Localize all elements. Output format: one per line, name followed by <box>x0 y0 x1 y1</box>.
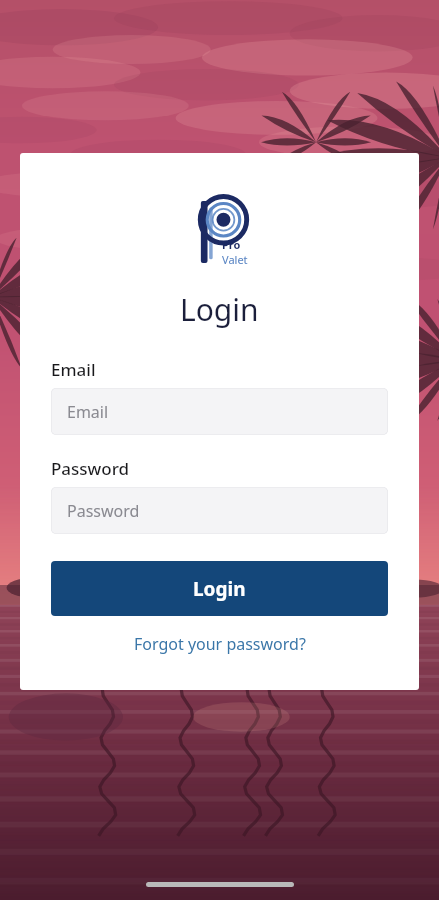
staticText: Login <box>180 289 259 330</box>
button[interactable]: Email <box>51 388 388 435</box>
staticText: Pro <box>222 237 241 252</box>
staticText: Password <box>51 457 130 480</box>
staticText: Login <box>193 576 246 602</box>
staticText: Password <box>67 500 140 522</box>
button[interactable]: Password <box>51 487 388 534</box>
staticText: Forgot your password? <box>134 633 306 655</box>
button[interactable]: Login <box>51 561 388 616</box>
staticText: Email <box>67 401 109 423</box>
staticText: Valet <box>222 252 248 267</box>
staticText: Email <box>51 358 96 381</box>
button[interactable]: Forgot your password? <box>51 629 388 659</box>
